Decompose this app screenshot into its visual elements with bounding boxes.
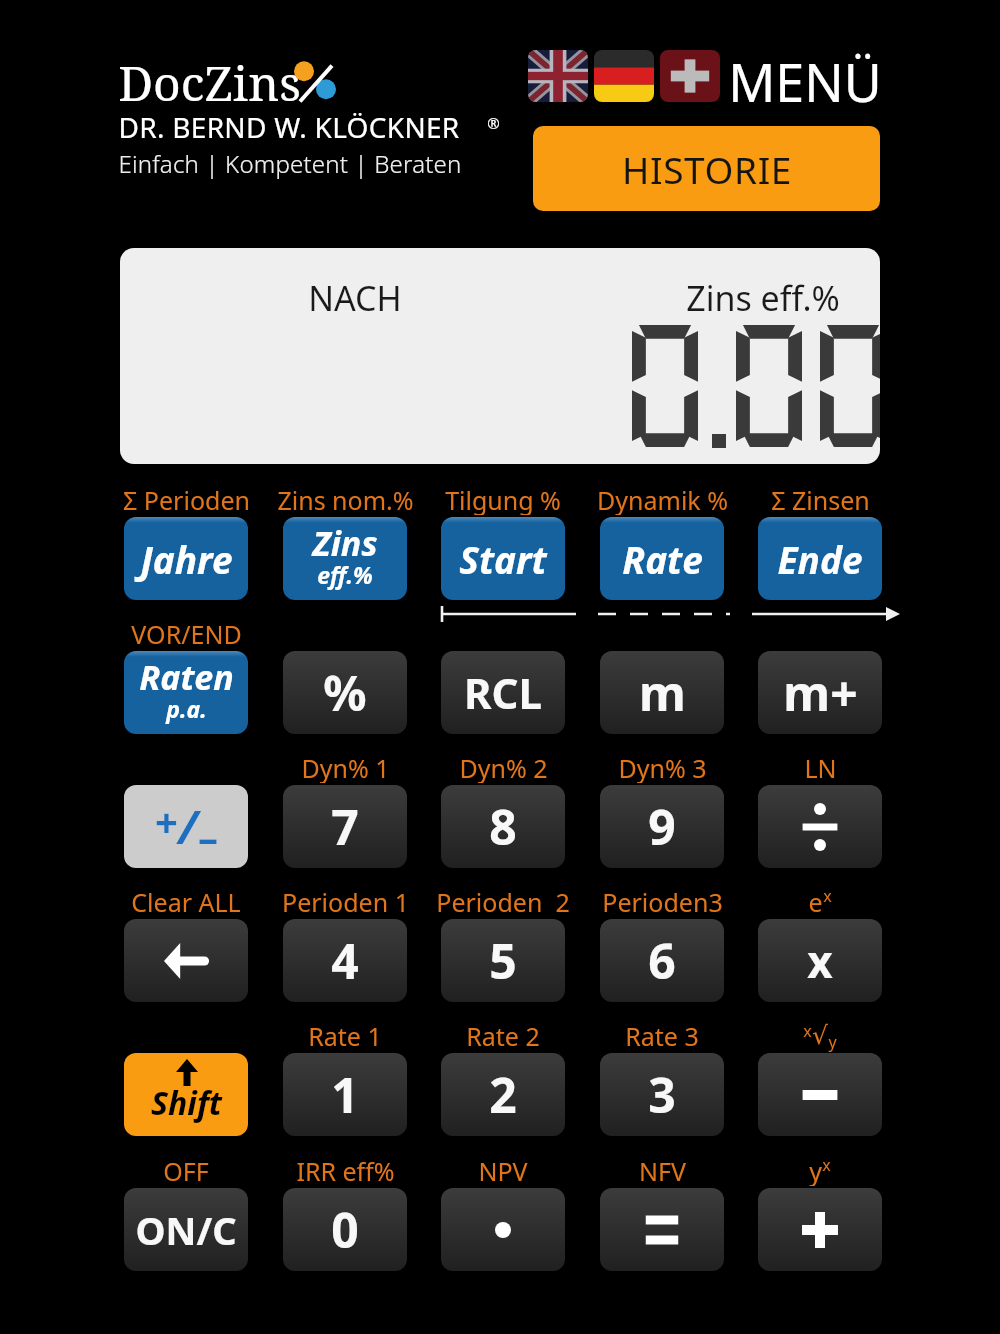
button[interactable]: x — [758, 919, 882, 1002]
staticText: % — [323, 660, 367, 725]
button[interactable]: ON/C — [124, 1188, 248, 1271]
staticText: Rate 1 — [308, 1019, 382, 1051]
staticText: ® — [487, 113, 500, 133]
staticText: √ — [812, 1021, 828, 1050]
button[interactable]: Equals — [600, 1188, 724, 1271]
staticText: Σ Zinsen — [771, 483, 870, 515]
staticText: 8 — [489, 794, 517, 859]
staticText: Clear ALL — [131, 885, 241, 917]
staticText: 4 — [331, 928, 359, 993]
staticText: DR. BERND W. KLÖCKNER — [118, 108, 460, 146]
staticText: NFV — [639, 1154, 686, 1186]
staticText: Rate — [622, 534, 703, 584]
button[interactable]: RCL — [441, 651, 565, 734]
button[interactable]: 2 — [441, 1053, 565, 1136]
button[interactable]: 4 — [283, 919, 407, 1002]
button[interactable]: Jahre — [124, 517, 248, 600]
staticText: Ende — [777, 534, 863, 584]
button[interactable]: 6 — [600, 919, 724, 1002]
staticText: DocZins — [118, 50, 301, 106]
staticText: Perioden3 — [602, 885, 723, 917]
staticText: Zins nom.% — [277, 483, 414, 515]
staticText: x — [823, 885, 832, 907]
staticText: – — [198, 809, 218, 863]
button[interactable]: Plus minus — [124, 785, 248, 868]
staticText: Raten — [139, 654, 234, 700]
staticText: + — [155, 794, 178, 848]
button[interactable]: 3 — [600, 1053, 724, 1136]
button[interactable]: Ende — [758, 517, 882, 600]
staticText: / — [178, 795, 198, 858]
staticText: Perioden 2 — [436, 885, 570, 917]
staticText: VOR/END — [131, 617, 242, 649]
staticText: NACH — [308, 275, 402, 321]
staticText: IRR eff% — [296, 1154, 395, 1186]
button[interactable]: UK — [528, 50, 588, 102]
button[interactable]: % — [283, 651, 407, 734]
staticText: y — [809, 1154, 822, 1186]
button[interactable]: Divide — [758, 785, 882, 868]
staticText: Dyn% 2 — [459, 751, 548, 783]
button[interactable]: m — [600, 651, 724, 734]
staticText: eff.% — [317, 559, 373, 590]
staticText: Rate 3 — [625, 1019, 699, 1051]
staticText: 1 — [331, 1062, 359, 1127]
button[interactable]: 1 — [283, 1053, 407, 1136]
button[interactable]: Plus — [758, 1188, 882, 1271]
staticText: 3 — [648, 1062, 676, 1127]
button[interactable]: HISTORIE — [533, 126, 880, 211]
button[interactable]: Backspace — [124, 919, 248, 1002]
button[interactable]: Decimal point — [441, 1188, 565, 1271]
staticText: 9 — [648, 794, 676, 859]
button[interactable]: 8 — [441, 785, 565, 868]
button[interactable]: m+ — [758, 651, 882, 734]
button[interactable]: Raten — [124, 651, 248, 734]
button[interactable]: MENÜ — [728, 46, 890, 108]
staticText: Shift — [151, 1081, 222, 1125]
button[interactable]: Rate — [600, 517, 724, 600]
button[interactable]: 0 — [283, 1188, 407, 1271]
staticText: 0 — [331, 1197, 359, 1262]
button[interactable]: Start — [441, 517, 565, 600]
staticText: 2 — [489, 1062, 517, 1127]
button[interactable]: CH — [660, 50, 720, 102]
staticText: Jahre — [140, 534, 233, 584]
button[interactable]: Minus — [758, 1053, 882, 1136]
staticText: Σ Perioden — [123, 483, 250, 515]
button[interactable]: 5 — [441, 919, 565, 1002]
staticText: x — [822, 1154, 831, 1176]
staticText: y — [828, 1031, 837, 1053]
staticText: NPV — [478, 1154, 528, 1186]
staticText: Dyn% 1 — [301, 751, 390, 783]
staticText: Dynamik % — [597, 483, 728, 515]
staticText: 7 — [331, 794, 359, 859]
staticText: LN — [804, 751, 837, 783]
staticText: RCL — [464, 664, 542, 721]
staticText: m — [639, 660, 686, 725]
staticText: Start — [459, 534, 547, 584]
staticText: Perioden 1 — [282, 885, 409, 917]
staticText: Dyn% 3 — [618, 751, 707, 783]
staticText: ON/C — [135, 1204, 237, 1256]
button[interactable]: 9 — [600, 785, 724, 868]
button[interactable]: DE — [594, 50, 654, 102]
staticText: Zins — [312, 520, 378, 566]
staticText: e — [808, 885, 823, 917]
staticText: Einfach | Kompetent | Beraten — [118, 147, 462, 180]
button[interactable]: Shift — [124, 1053, 248, 1136]
button[interactable]: NACH — [120, 248, 880, 464]
staticText: x — [803, 1020, 812, 1042]
staticText: OFF — [163, 1154, 209, 1186]
staticText: x — [807, 931, 833, 991]
staticText: MENÜ — [728, 46, 882, 108]
staticText: HISTORIE — [622, 144, 792, 194]
staticText: p.a. — [166, 693, 207, 724]
staticText: Rate 2 — [466, 1019, 540, 1051]
staticText: Tilgung % — [445, 483, 561, 515]
staticText: m+ — [783, 660, 858, 725]
button[interactable]: 7 — [283, 785, 407, 868]
staticText: Zins eff.% — [686, 275, 840, 321]
staticText: 6 — [648, 928, 676, 993]
button[interactable]: Zins — [283, 517, 407, 600]
staticText: 5 — [489, 928, 517, 993]
